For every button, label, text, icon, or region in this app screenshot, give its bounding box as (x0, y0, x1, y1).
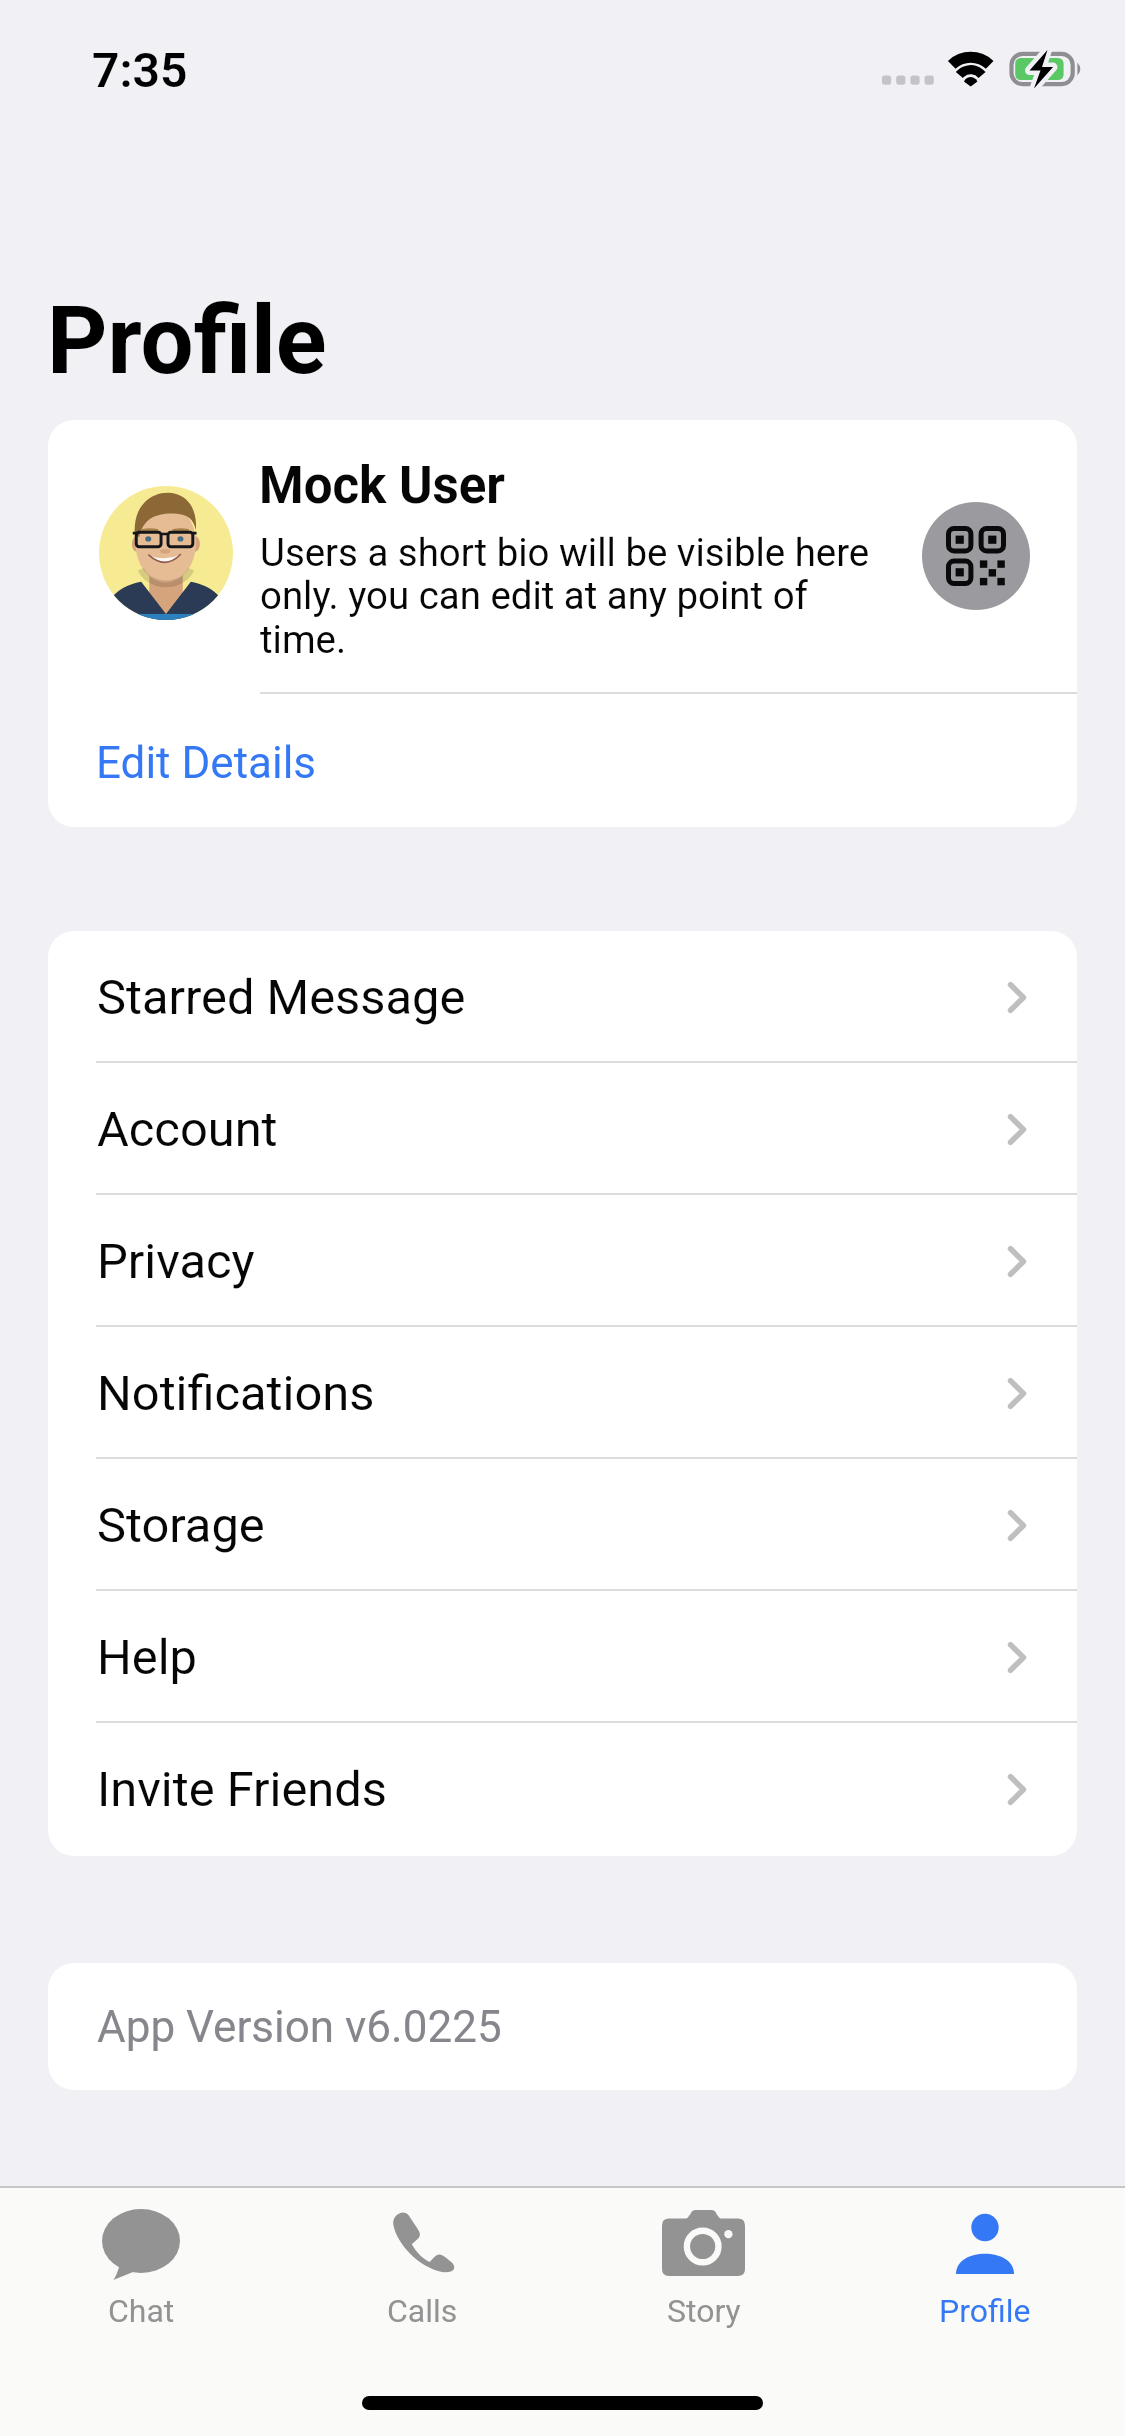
staticText: Storage (97, 1497, 265, 1554)
button[interactable]: Starred Message (48, 931, 1077, 1063)
staticText: Chat (108, 2292, 175, 2330)
staticText: Invite Friends (97, 1761, 387, 1818)
button[interactable]: Notifications (48, 1327, 1077, 1459)
staticText: Edit Details (96, 737, 317, 789)
staticText: Users a short bio will be visible here o… (260, 530, 892, 663)
button[interactable]: Privacy (48, 1195, 1077, 1327)
staticText: Profile (939, 2292, 1031, 2330)
staticText: Story (667, 2292, 741, 2330)
button[interactable]: Help (48, 1591, 1077, 1723)
staticText: Help (97, 1629, 197, 1686)
staticText: Profile (47, 286, 327, 396)
button[interactable]: Account (48, 1063, 1077, 1195)
button[interactable]: Invite Friends (48, 1723, 1077, 1855)
staticText: Mock User (259, 456, 505, 516)
button[interactable]: Edit Details (48, 695, 1077, 827)
button[interactable]: Calls (282, 2188, 563, 2436)
staticText: 7:35 (92, 42, 188, 98)
staticText: App Version v6.0225 (97, 2001, 502, 2053)
staticText: Account (97, 1101, 278, 1158)
staticText: Calls (387, 2292, 458, 2330)
staticText: Notifications (97, 1365, 375, 1422)
button[interactable]: Storage (48, 1459, 1077, 1591)
staticText: Privacy (97, 1233, 255, 1290)
staticText: Starred Message (97, 969, 466, 1026)
button[interactable]: Show QR code (922, 502, 1030, 610)
button[interactable]: Profile (844, 2188, 1125, 2436)
button[interactable]: Chat (0, 2188, 282, 2436)
button[interactable]: Story (563, 2188, 844, 2436)
